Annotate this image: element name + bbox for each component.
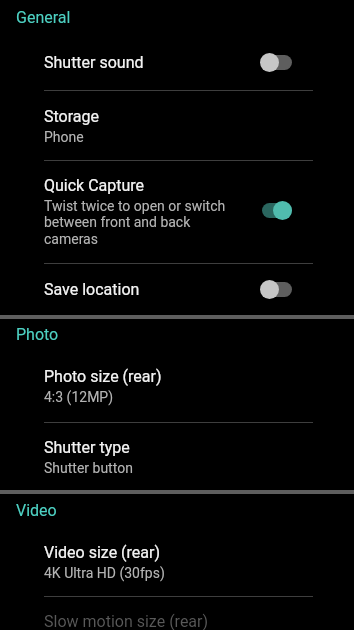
staticText: Shutter sound <box>44 53 144 72</box>
staticText: Storage <box>44 107 99 126</box>
staticText: Slow motion size (rear) <box>44 612 209 630</box>
staticText: Twist twice to open or switch between fr… <box>44 198 234 247</box>
staticText: Photo <box>16 325 59 344</box>
button[interactable]: Quick Capture <box>260 201 292 220</box>
staticText: 4K Ultra HD (30fps) <box>44 565 165 581</box>
staticText: 4:3 (12MP) <box>44 389 114 405</box>
staticText: Video size (rear) <box>44 543 161 562</box>
button[interactable]: Save location <box>260 280 292 299</box>
button[interactable]: Photo size (rear) <box>0 350 354 422</box>
staticText: Phone <box>44 129 84 145</box>
staticText: General <box>16 8 71 27</box>
button[interactable]: Shutter sound <box>0 35 354 90</box>
button[interactable]: Video size (rear) <box>0 527 354 596</box>
staticText: Quick Capture <box>44 176 145 195</box>
staticText: Video <box>16 501 57 520</box>
button[interactable]: Slow motion size (rear) <box>0 597 354 630</box>
staticText: Shutter button <box>44 460 133 476</box>
staticText: Photo size (rear) <box>44 367 162 386</box>
button[interactable]: Shutter type <box>0 423 354 490</box>
staticText: Shutter type <box>44 438 130 457</box>
button[interactable]: Shutter sound <box>260 53 292 72</box>
button[interactable]: Save location <box>0 264 354 315</box>
button[interactable]: Storage <box>0 91 354 160</box>
button[interactable]: Quick Capture <box>0 161 354 263</box>
staticText: Save location <box>44 280 140 299</box>
